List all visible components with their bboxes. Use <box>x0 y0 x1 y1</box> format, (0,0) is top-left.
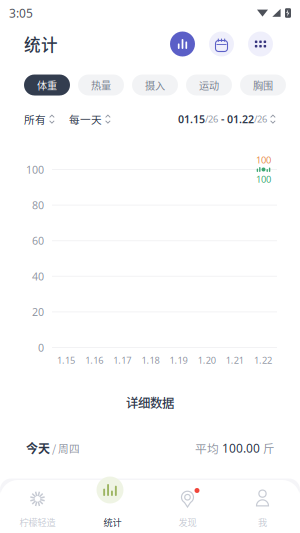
button[interactable]: 所有 <box>24 111 55 127</box>
staticText: 20 <box>32 305 44 319</box>
staticText: 1.16 <box>85 354 103 366</box>
staticText: 1.17 <box>113 354 131 366</box>
staticText: 我 <box>258 515 267 529</box>
staticText: 摄入 <box>145 78 165 92</box>
button[interactable]: 胸围 <box>240 74 286 95</box>
staticText: 1.21 <box>226 354 244 366</box>
staticText: - <box>218 112 227 126</box>
staticText: 详细数据 <box>126 393 174 411</box>
staticText: /26 <box>205 113 218 125</box>
staticText: 平均 <box>195 439 222 456</box>
staticText: 100 <box>256 154 271 166</box>
button[interactable]: 统计 <box>75 479 150 533</box>
staticText: 0 <box>38 340 44 355</box>
staticText: 100 <box>26 162 44 177</box>
button[interactable]: 热量 <box>78 74 124 95</box>
staticText: 60 <box>32 234 44 248</box>
staticText: 100.00 <box>222 440 260 456</box>
staticText: 100 <box>256 173 271 185</box>
button[interactable]: 每一天 <box>69 111 111 127</box>
staticText: 胸围 <box>253 78 273 92</box>
staticText: 1.18 <box>141 354 159 366</box>
button[interactable]: 柠檬轻造 <box>0 479 75 533</box>
staticText: 1.19 <box>170 354 188 366</box>
button[interactable]: 摄入 <box>132 74 178 95</box>
staticText: 每一天 <box>69 111 102 127</box>
staticText: 今天 <box>26 439 50 457</box>
button[interactable]: 发现 <box>150 479 225 533</box>
staticText: 3:05 <box>9 5 33 21</box>
staticText: / <box>50 440 58 456</box>
button[interactable]: 体重 <box>24 74 70 95</box>
button[interactable]: 运动 <box>186 74 232 95</box>
staticText: 1.22 <box>254 354 272 366</box>
staticText: /26 <box>254 113 267 125</box>
staticText: 统计 <box>103 515 121 529</box>
staticText: 热量 <box>91 78 111 92</box>
staticText: 运动 <box>199 78 219 92</box>
button[interactable]: 01.15 <box>178 112 276 126</box>
staticText: 80 <box>32 198 44 212</box>
staticText: 01.15 <box>178 112 205 126</box>
button[interactable]: 统计 <box>96 476 123 503</box>
staticText: 周四 <box>58 440 80 456</box>
staticText: 发现 <box>178 515 196 529</box>
staticText: 统计 <box>24 32 58 56</box>
button[interactable]: 日历 <box>209 31 234 56</box>
staticText: 1.15 <box>57 354 75 366</box>
button[interactable]: 更多 <box>248 31 273 56</box>
staticText: 体重 <box>37 78 57 92</box>
staticText: 所有 <box>24 111 46 127</box>
staticText: 01.22 <box>227 112 254 126</box>
staticText: 斤 <box>260 440 274 456</box>
button[interactable]: 我 <box>225 479 300 533</box>
button[interactable]: 图表 <box>170 31 195 56</box>
staticText: 柠檬轻造 <box>19 515 55 529</box>
staticText: 40 <box>32 269 44 283</box>
staticText: 1.20 <box>198 354 216 366</box>
